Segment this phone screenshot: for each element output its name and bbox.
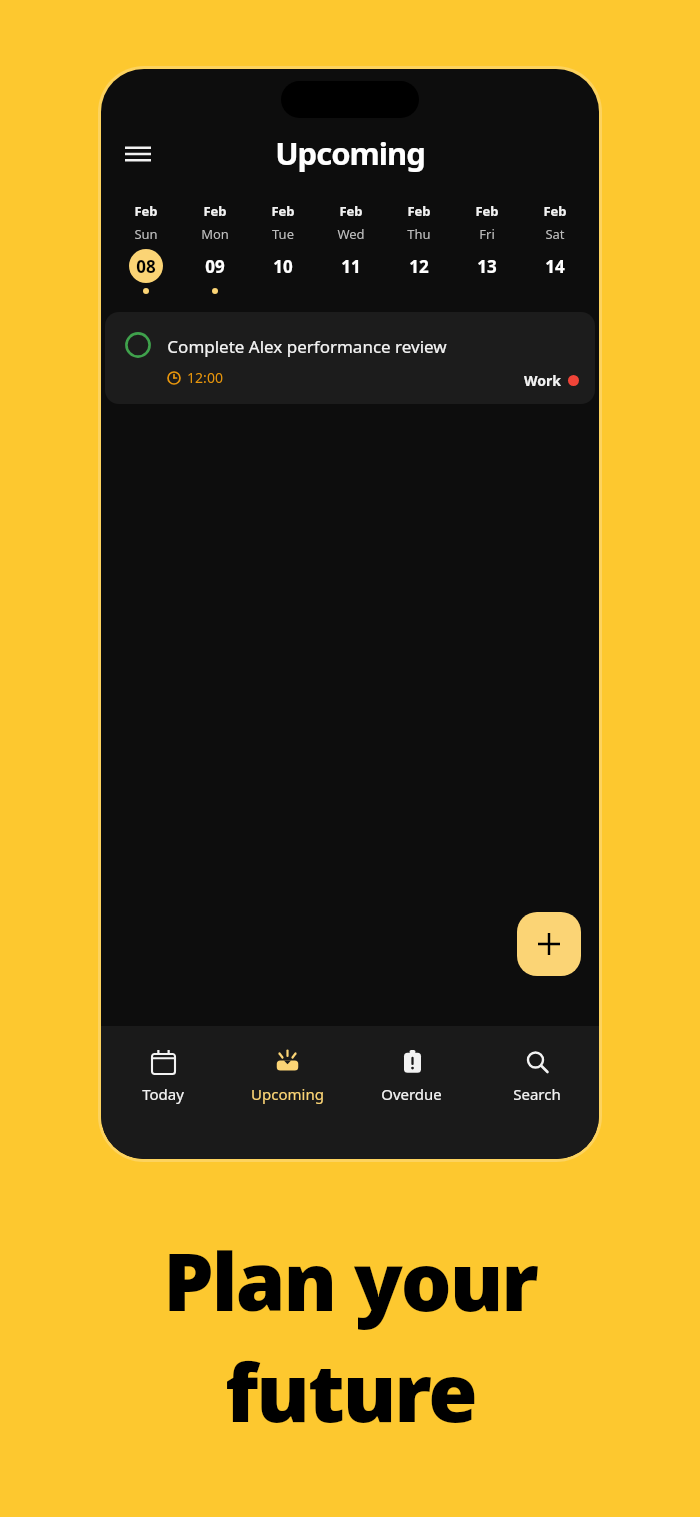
button[interactable]: Feb: [385, 202, 453, 294]
staticText: 12:00: [187, 368, 223, 387]
staticText: 14: [545, 255, 565, 278]
button[interactable]: Feb: [180, 202, 249, 294]
staticText: Sun: [134, 225, 158, 243]
staticText: 10: [273, 255, 293, 278]
staticText: Complete Alex performance review: [167, 335, 447, 358]
staticText: Upcoming: [251, 1084, 324, 1104]
staticText: Search: [513, 1084, 561, 1104]
staticText: 09: [205, 255, 225, 278]
staticText: Feb: [407, 202, 431, 220]
button[interactable]: Feb: [249, 202, 317, 294]
staticText: Mon: [201, 225, 229, 243]
button[interactable]: Add task: [517, 912, 581, 976]
button[interactable]: Mark complete: [123, 330, 153, 360]
staticText: Work: [524, 371, 561, 390]
staticText: future: [225, 1336, 476, 1445]
staticText: Thu: [407, 225, 431, 243]
staticText: Tue: [272, 225, 294, 243]
staticText: Feb: [203, 202, 227, 220]
staticText: 08: [136, 255, 156, 278]
button[interactable]: Feb: [521, 202, 589, 294]
staticText: Wed: [337, 225, 365, 243]
button[interactable]: Feb: [453, 202, 521, 294]
button[interactable]: Menu: [115, 131, 161, 177]
staticText: Plan your: [163, 1225, 537, 1334]
staticText: Overdue: [381, 1084, 442, 1104]
button[interactable]: Search: [474, 1043, 599, 1108]
staticText: Sat: [545, 225, 565, 243]
staticText: Feb: [339, 202, 363, 220]
button[interactable]: Overdue: [349, 1043, 474, 1108]
staticText: Feb: [475, 202, 499, 220]
staticText: 11: [341, 255, 361, 278]
button[interactable]: Today: [101, 1043, 225, 1108]
staticText: Feb: [271, 202, 295, 220]
staticText: Feb: [543, 202, 567, 220]
staticText: Feb: [134, 202, 158, 220]
button[interactable]: Mark complete: [105, 312, 595, 404]
button[interactable]: Feb: [111, 202, 180, 294]
button[interactable]: Upcoming: [225, 1043, 349, 1108]
staticText: Today: [142, 1084, 184, 1104]
staticText: 12: [409, 255, 429, 278]
button[interactable]: Feb: [317, 202, 385, 294]
staticText: Fri: [479, 225, 495, 243]
staticText: Upcoming: [275, 132, 425, 174]
staticText: 13: [477, 255, 497, 278]
